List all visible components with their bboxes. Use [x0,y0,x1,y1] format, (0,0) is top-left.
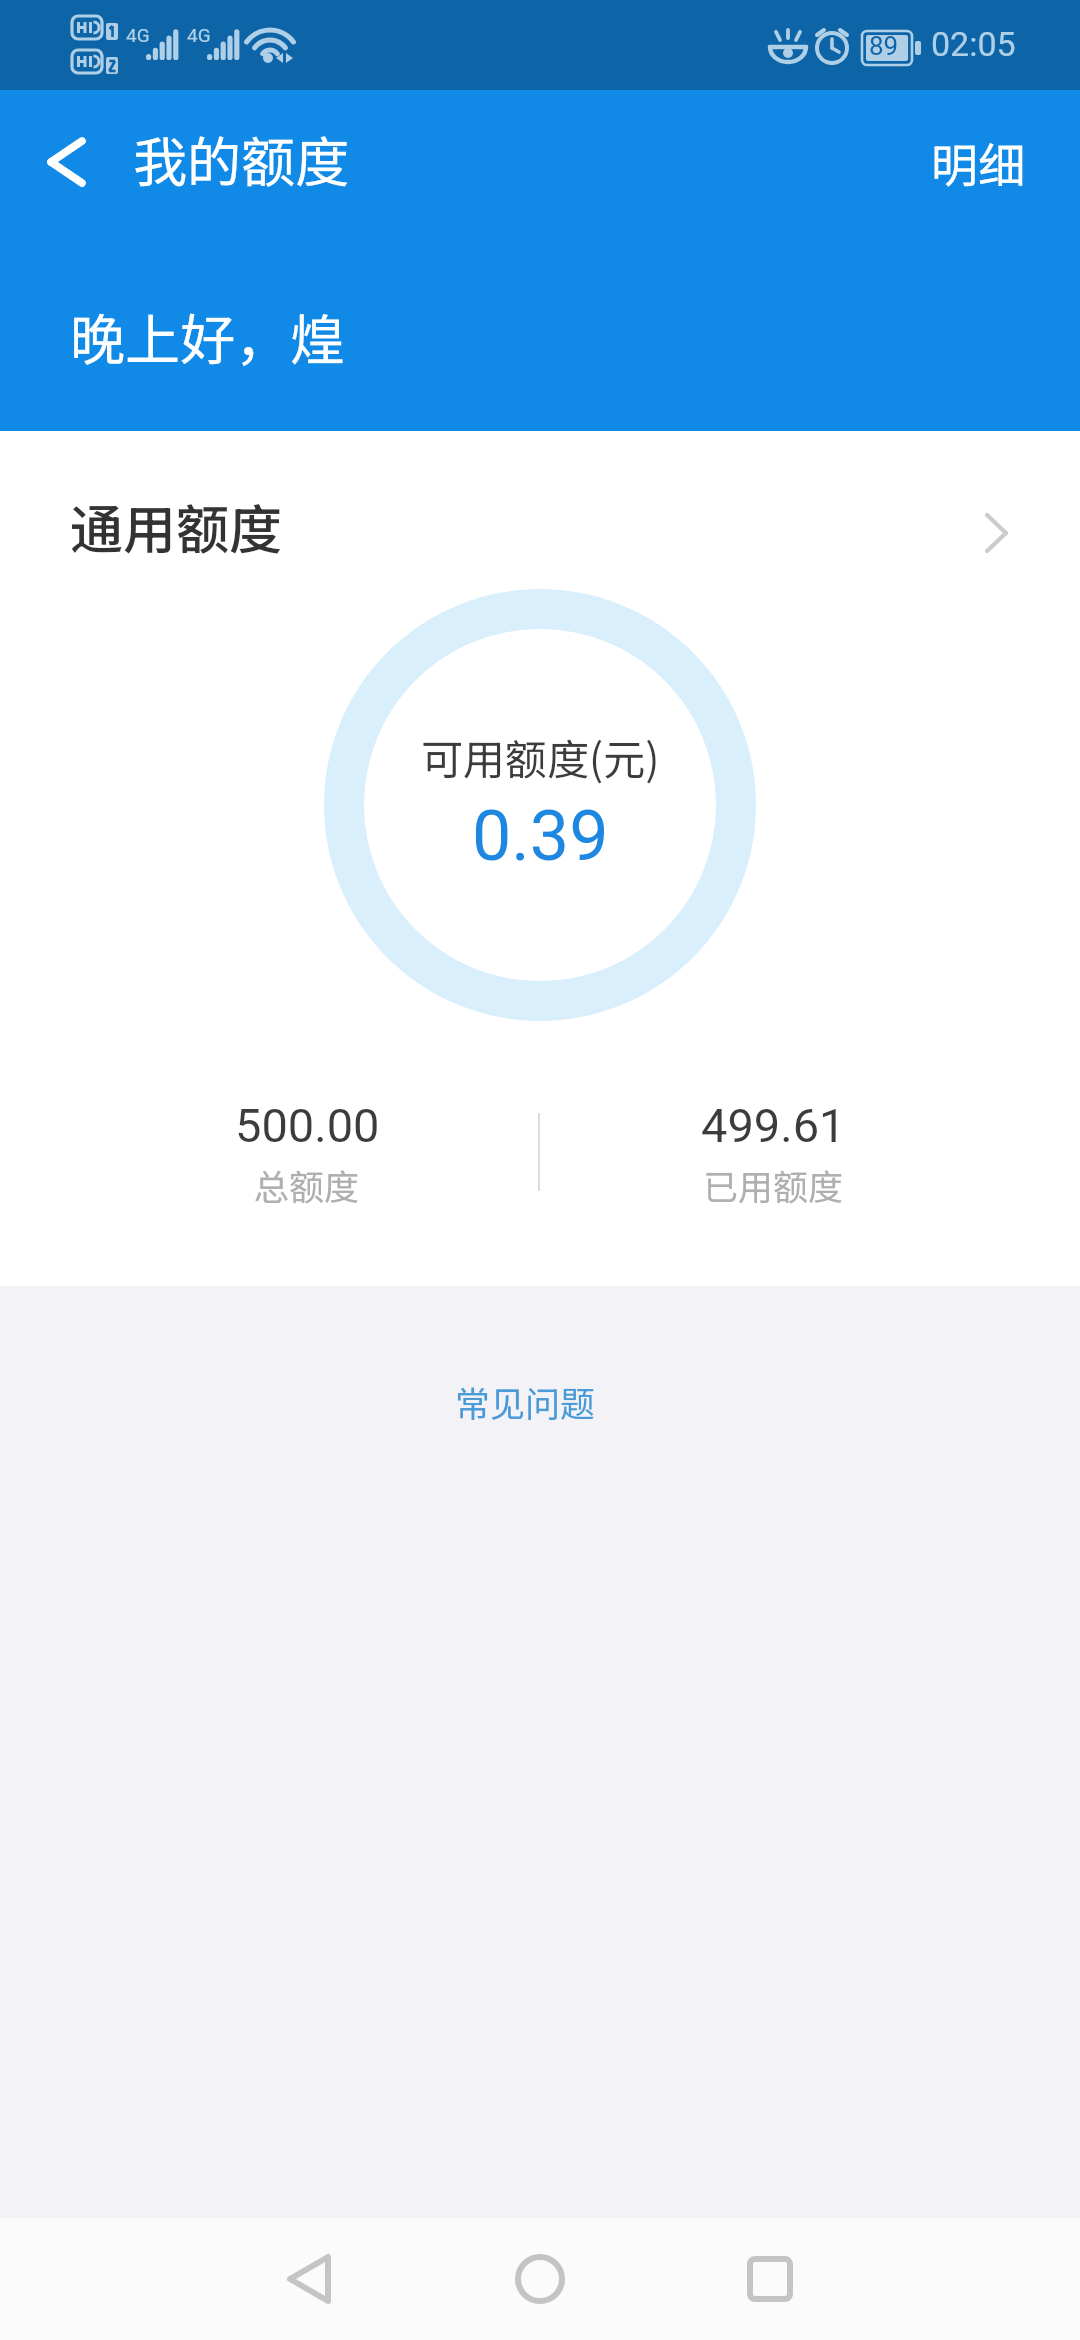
staticText: 499.61 [701,1098,846,1153]
button[interactable]: Back [234,2218,384,2340]
staticText: 明细 [931,128,1025,196]
staticText: 我的额度 [133,119,349,197]
staticText: 4G [126,24,150,46]
staticText: 02:05 [931,24,1016,64]
staticText: 4G [187,24,211,46]
button[interactable]: Home [465,2218,615,2340]
staticText: 500.00 [235,1098,380,1153]
staticText: 0.39 [472,795,609,877]
button[interactable]: 通用额度 [0,448,1080,614]
staticText: 可用额度(元) [421,726,660,787]
staticText: 89 [869,31,899,61]
button[interactable]: 明细 [900,108,1060,216]
staticText: 已用额度 [703,1159,844,1210]
staticText: 常见问题 [455,1376,596,1427]
staticText: 通用额度 [70,488,282,565]
staticText: 总额度 [254,1159,360,1210]
button[interactable]: Recents [695,2218,845,2340]
button[interactable]: 常见问题 [390,1359,660,1443]
staticText: 晚上好，煌 [70,296,346,376]
button[interactable]: Back [18,108,118,216]
